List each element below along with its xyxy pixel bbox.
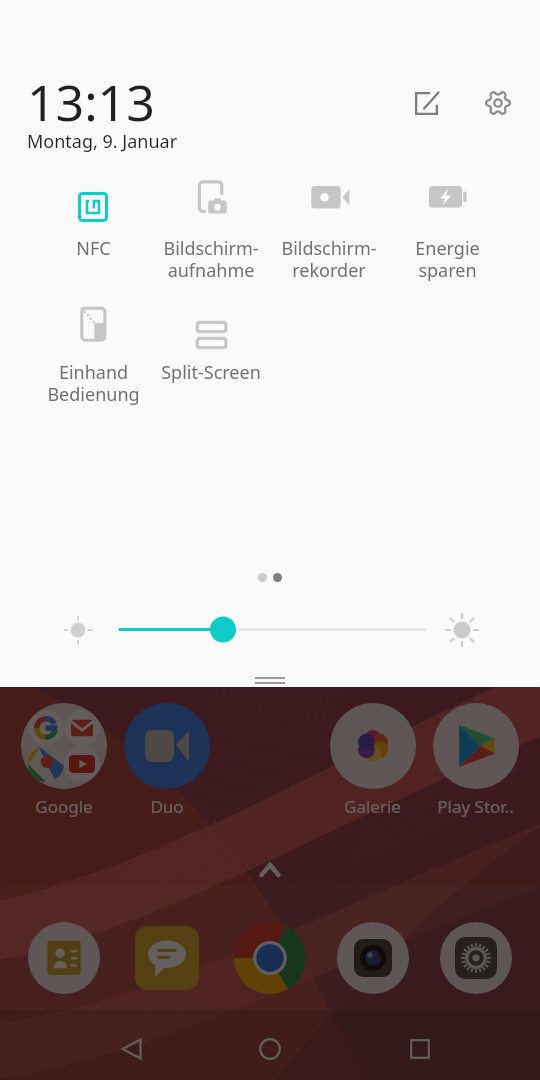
staticText: Split-Screen [161,360,261,385]
button[interactable]: Galerie [321,703,424,818]
staticText: Einhand Bedienung [47,360,140,406]
staticText: 13:13 [27,68,155,136]
button[interactable]: Recents [396,1025,444,1073]
staticText: Google [35,795,93,818]
button[interactable]: Home [246,1025,294,1073]
button[interactable]: Back [107,1025,155,1073]
button[interactable]: Einhand Bedienung [34,300,152,406]
button[interactable]: Messages [115,918,218,998]
staticText: Montag, 9. Januar [27,129,178,154]
button[interactable]: Google [13,703,115,818]
button[interactable]: Settings [474,79,522,127]
button[interactable]: Chrome [218,918,321,998]
button[interactable]: Settings [424,918,527,998]
button[interactable]: Duo [115,703,218,818]
button[interactable]: Split-Screen [152,300,270,385]
staticText: NFC [76,236,111,261]
button[interactable]: Energie sparen [388,176,506,282]
button[interactable]: Play Stor.. [424,703,527,818]
staticText: Energie sparen [415,236,480,282]
button[interactable]: All apps [252,852,288,888]
staticText: Duo [150,795,184,818]
button[interactable]: NFC [34,176,152,261]
button[interactable]: Edit [402,79,450,127]
button[interactable]: Camera [321,918,424,998]
button[interactable]: Bildschirm- rekorder [270,176,388,282]
button[interactable]: Bildschirm- aufnahme [152,176,270,282]
button[interactable]: Contacts [13,918,115,998]
staticText: Bildschirm- rekorder [281,236,377,282]
staticText: Bildschirm- aufnahme [163,236,259,282]
staticText: Play Stor.. [437,795,514,818]
staticText: Galerie [344,795,401,818]
